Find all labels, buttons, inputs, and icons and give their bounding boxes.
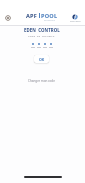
staticText: APF xyxy=(26,12,38,20)
staticText: EDEN CONTROL xyxy=(24,27,60,33)
button[interactable]: Changer mon code xyxy=(28,79,55,83)
button[interactable]: Back xyxy=(5,15,11,21)
button[interactable]: OK xyxy=(34,55,49,63)
staticText: CODE DE SECURITE xyxy=(28,34,55,37)
staticText: PISCINES xyxy=(44,19,56,22)
staticText: CONNECTE xyxy=(70,20,81,23)
staticText: POOL xyxy=(41,12,58,20)
button[interactable]: Connected xyxy=(66,13,84,23)
staticText: OK xyxy=(39,57,45,62)
